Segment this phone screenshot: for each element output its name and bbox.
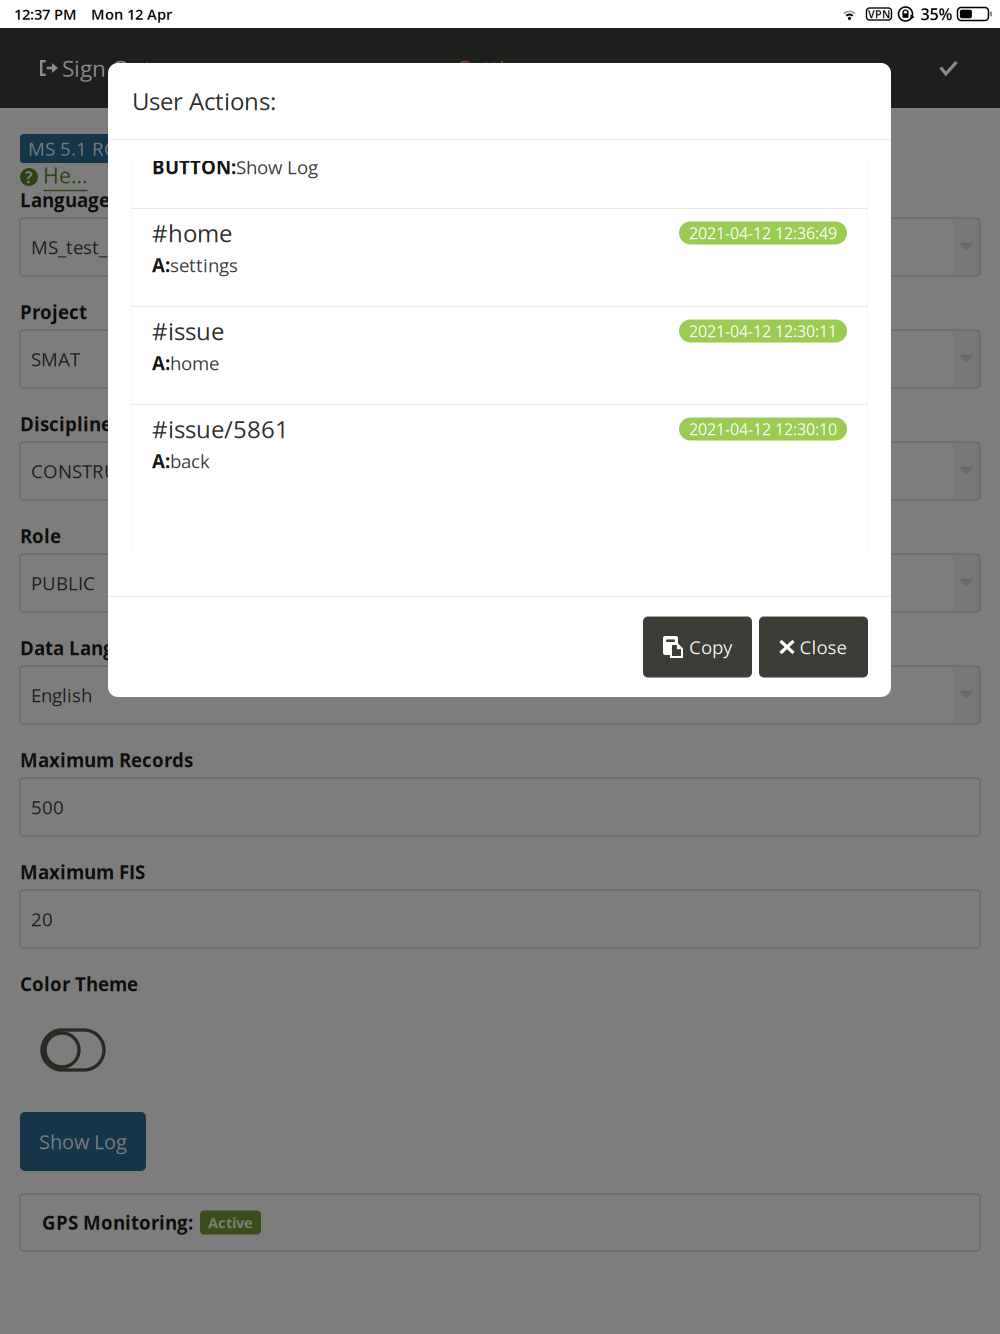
staticText: 2021-04-12 12:36:49 xyxy=(689,222,837,244)
staticText: 2021-04-12 12:30:10 xyxy=(689,418,837,440)
staticText: English xyxy=(31,682,92,708)
staticText: MS 5.1 RC3 xyxy=(28,136,127,161)
staticText: Project xyxy=(20,299,87,325)
staticText: #issue xyxy=(152,315,224,347)
button[interactable]: 500 xyxy=(20,778,980,836)
button[interactable]: 20 xyxy=(20,890,980,948)
staticText: VPN xyxy=(868,7,890,21)
staticText: Data Language xyxy=(20,635,159,661)
staticText: Color Theme xyxy=(20,971,138,997)
staticText: Settings xyxy=(458,53,542,83)
button[interactable]: PUBLIC xyxy=(20,554,980,612)
staticText: home xyxy=(170,350,219,376)
staticText: A: xyxy=(152,350,170,376)
staticText: Maximum FIS xyxy=(20,859,145,885)
button[interactable]: MS_test_EN xyxy=(20,218,980,276)
staticText: 2021-04-12 12:36:51 xyxy=(689,124,837,146)
button[interactable]: Copy xyxy=(643,616,752,677)
button[interactable]: Sign Out xyxy=(24,43,168,93)
staticText: 12:37 PM xyxy=(14,4,77,24)
staticText: CONSTRUCTION xyxy=(31,458,174,484)
staticText: 2021-04-12 12:30:11 xyxy=(689,320,837,342)
staticText: 35% xyxy=(920,3,952,25)
staticText: SMAT xyxy=(31,346,80,372)
button[interactable]: ? xyxy=(20,167,88,187)
staticText: Maximum Records xyxy=(20,747,193,773)
staticText: Show Log xyxy=(39,1128,127,1155)
button[interactable]: Colour theme xyxy=(20,1030,104,1070)
staticText: Active xyxy=(208,1212,253,1232)
staticText: #issue/5861 xyxy=(152,413,289,445)
button[interactable]: English xyxy=(20,666,980,724)
staticText: Language xyxy=(20,187,110,213)
staticText: Role xyxy=(20,523,61,549)
staticText: 20 xyxy=(31,906,53,932)
staticText: A: xyxy=(152,448,170,474)
staticText: A: xyxy=(152,252,170,278)
staticText: Sign Out xyxy=(62,53,152,83)
staticText: Help xyxy=(43,161,88,190)
staticText: 500 xyxy=(31,794,64,820)
staticText: Close xyxy=(799,634,846,660)
staticText: ? xyxy=(25,166,33,188)
button[interactable]: SMAT xyxy=(20,330,980,388)
button[interactable]: Show Log xyxy=(20,1112,146,1171)
button[interactable]: CONSTRUCTION xyxy=(20,442,980,500)
button[interactable]: Close xyxy=(759,616,868,677)
staticText: Copy xyxy=(689,634,732,660)
staticText: back xyxy=(170,448,210,474)
staticText: #settings xyxy=(152,119,255,151)
staticText: Discipline xyxy=(20,411,112,437)
staticText: MS_test_EN xyxy=(31,234,131,260)
staticText: Show Log xyxy=(236,154,318,180)
staticText: GPS Monitoring: xyxy=(42,1210,193,1235)
staticText: Mon 12 Apr xyxy=(91,4,172,24)
staticText: User Actions: xyxy=(132,85,276,117)
button[interactable]: Save xyxy=(921,43,976,93)
staticText: #home xyxy=(152,217,232,249)
staticText: settings xyxy=(170,252,238,278)
staticText: BUTTON: xyxy=(152,154,236,180)
staticText: PUBLIC xyxy=(31,570,95,596)
